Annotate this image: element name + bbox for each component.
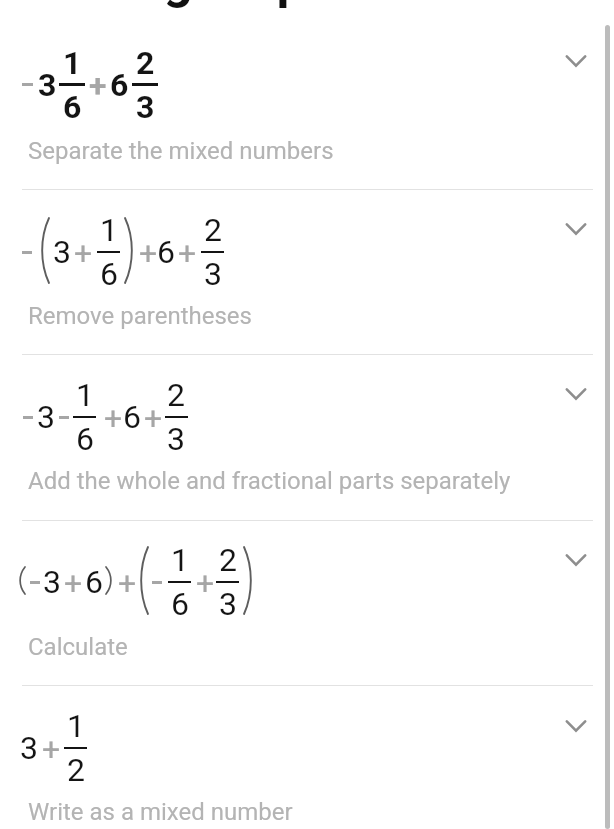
- staticText: Write as a mixed number: [28, 798, 293, 826]
- staticText: Add the whole and fractional parts separ…: [28, 467, 511, 495]
- button[interactable]: Expand step: [552, 370, 600, 418]
- staticText: 6: [85, 563, 103, 601]
- staticText: 1: [67, 707, 85, 745]
- staticText: 6: [110, 66, 129, 104]
- staticText: +: [118, 564, 137, 602]
- staticText: 2: [67, 751, 85, 789]
- staticText: 6: [100, 255, 118, 293]
- button[interactable]: Expand step: [552, 37, 600, 85]
- staticText: +: [89, 67, 107, 105]
- staticText: Remove parentheses: [28, 302, 252, 330]
- staticText: 3: [136, 88, 155, 126]
- button[interactable]: 3: [0, 0, 614, 188]
- staticText: +: [42, 730, 61, 768]
- staticText: +: [196, 564, 215, 602]
- staticText: 3: [38, 66, 57, 104]
- staticText: 2: [204, 211, 222, 249]
- button[interactable]: Expand step: [552, 536, 600, 584]
- staticText: 1: [100, 211, 118, 249]
- staticText: Solving steps: [22, 0, 332, 10]
- staticText: 3: [167, 420, 185, 458]
- staticText: 6: [157, 233, 175, 271]
- staticText: +: [178, 234, 197, 272]
- staticText: 6: [123, 398, 141, 436]
- staticText: 6: [63, 88, 82, 126]
- staticText: 3: [204, 255, 222, 293]
- staticText: 3: [37, 398, 55, 436]
- staticText: +: [104, 399, 123, 437]
- button[interactable]: 3: [0, 0, 614, 69]
- button[interactable]: 3: [0, 0, 614, 48]
- button[interactable]: 3: [0, 0, 614, 48]
- staticText: 3: [20, 729, 38, 767]
- staticText: 1: [63, 44, 82, 82]
- staticText: 6: [171, 585, 189, 623]
- staticText: 2: [136, 44, 155, 82]
- staticText: 3: [53, 233, 71, 271]
- staticText: +: [139, 234, 158, 272]
- staticText: 1: [76, 376, 94, 414]
- staticText: 1: [171, 541, 189, 579]
- staticText: +: [144, 399, 163, 437]
- staticText: 2: [167, 376, 185, 414]
- button[interactable]: 3: [0, 0, 614, 71]
- button[interactable]: Expand step: [552, 205, 600, 253]
- staticText: 3: [43, 563, 61, 601]
- staticText: +: [74, 234, 93, 272]
- staticText: 6: [76, 420, 94, 458]
- staticText: Calculate: [28, 633, 128, 661]
- staticText: 2: [219, 541, 237, 579]
- button[interactable]: Expand step: [552, 702, 600, 750]
- staticText: +: [64, 564, 83, 602]
- staticText: Separate the mixed numbers: [28, 137, 334, 165]
- staticText: 3: [219, 585, 237, 623]
